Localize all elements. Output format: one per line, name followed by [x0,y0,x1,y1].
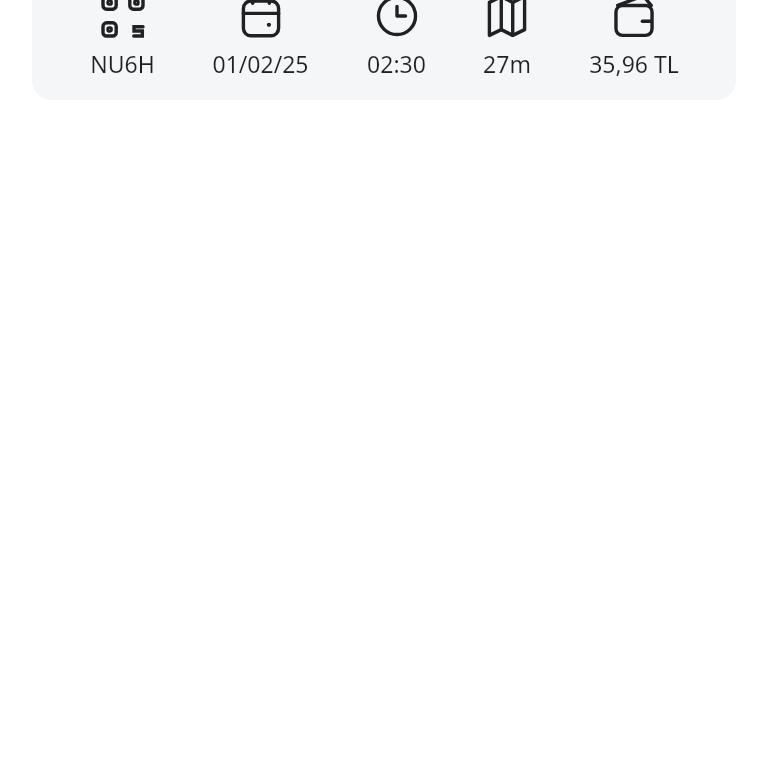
staticText: 01/02/25 [212,48,309,79]
staticText: 35,96 TL [589,48,679,79]
button[interactable]: Date [212,0,309,79]
button[interactable]: Booking code [90,0,155,79]
staticText: 02:30 [367,48,426,79]
button[interactable]: Duration [367,0,426,79]
button[interactable]: Distance [483,0,531,79]
staticText: NU6H [90,48,155,79]
staticText: 27m [483,48,531,79]
button[interactable]: Price [589,0,679,79]
